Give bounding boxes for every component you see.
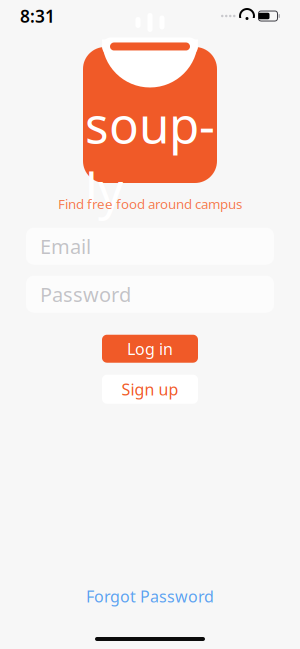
- button[interactable]: Sign up: [102, 375, 198, 404]
- staticText: Log in: [127, 338, 173, 359]
- button[interactable]: Forgot Password: [72, 580, 228, 613]
- staticText: souply: [85, 91, 215, 222]
- staticText: Password: [40, 281, 131, 307]
- staticText: 8:31: [20, 4, 55, 27]
- staticText: Find free food around campus: [58, 195, 242, 213]
- staticText: Sign up: [121, 379, 178, 400]
- staticText: Email: [40, 233, 91, 259]
- staticText: Forgot Password: [86, 586, 214, 607]
- button[interactable]: Log in: [102, 335, 198, 363]
